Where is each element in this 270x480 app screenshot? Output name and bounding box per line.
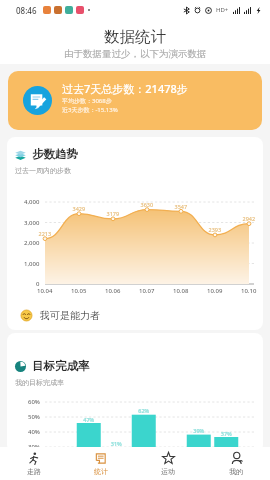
- staticText: 过去7天总步数：21478步: [62, 81, 188, 96]
- staticText: 我的: [229, 467, 243, 476]
- button[interactable]: 统计: [67, 447, 134, 480]
- staticText: 过去一周内的步数: [15, 166, 71, 175]
- staticText: 统计: [94, 467, 108, 476]
- staticText: 我的目标完成率: [15, 378, 64, 387]
- staticText: 08:46: [16, 5, 37, 16]
- staticText: HD+: [216, 6, 229, 14]
- staticText: 近3天步数：-15.13%: [62, 106, 118, 114]
- button[interactable]: 过去7天总步数：21478步: [8, 71, 262, 130]
- staticText: 步数趋势: [32, 147, 78, 161]
- button[interactable]: 运动: [134, 447, 202, 480]
- button[interactable]: 我的: [202, 447, 270, 480]
- staticText: 运动: [161, 467, 175, 476]
- staticText: 目标完成率: [32, 359, 90, 373]
- staticText: 数据统计: [104, 27, 166, 47]
- staticText: 走路: [27, 467, 41, 476]
- button[interactable]: 我可是能力者: [7, 300, 263, 330]
- button[interactable]: 走路: [0, 447, 67, 480]
- staticText: 我可是能力者: [40, 309, 100, 322]
- staticText: 平均步数：3068步: [62, 97, 112, 105]
- staticText: 由于数据量过少，以下为演示数据: [64, 48, 207, 60]
